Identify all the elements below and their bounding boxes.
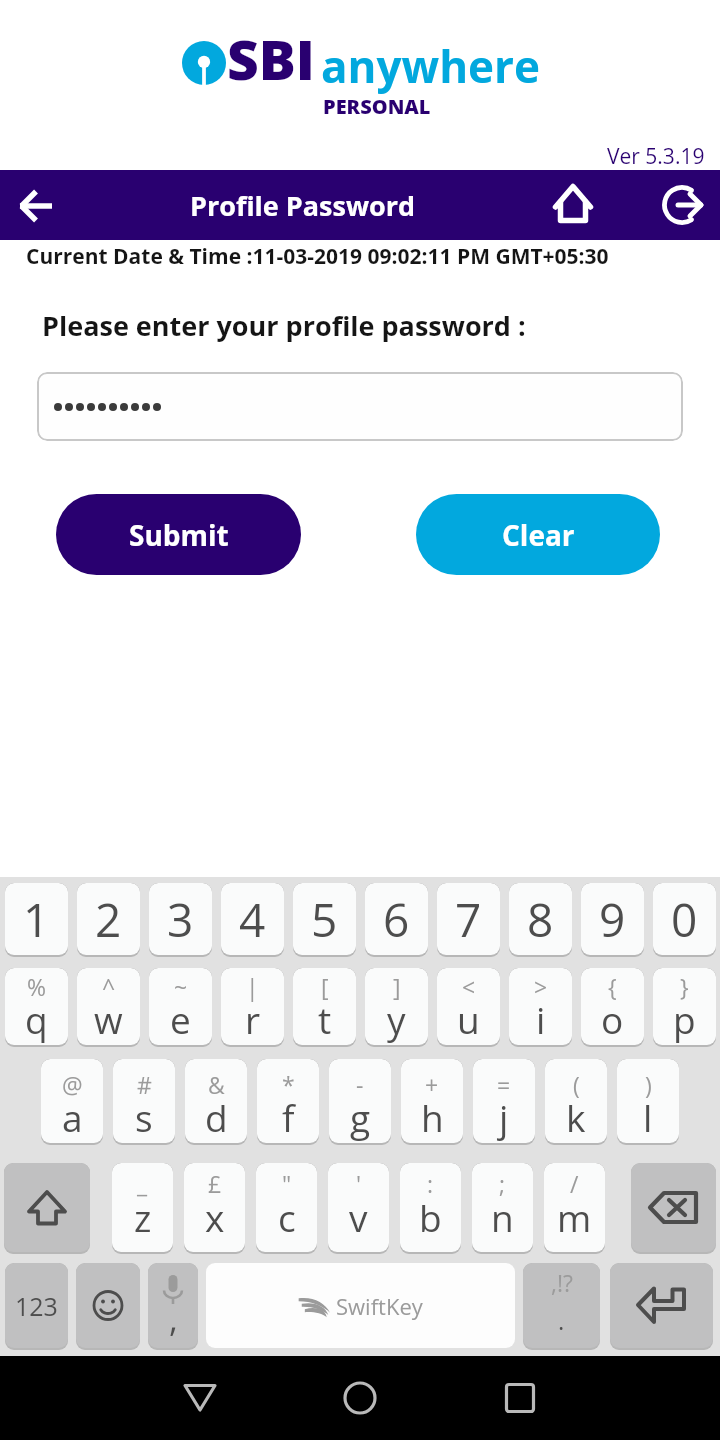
staticText: g [350,1092,371,1142]
staticText: SwiftKey [336,1291,423,1321]
button[interactable]: 5 [293,883,356,957]
staticText: { [608,971,617,1002]
staticText: anywhere [321,36,541,96]
button[interactable]: > [509,968,572,1047]
button[interactable]: 8 [509,883,572,957]
staticText: d [205,1092,228,1142]
button[interactable]: ^ [77,968,140,1047]
button[interactable]: * [257,1059,319,1145]
button[interactable]: ' [328,1163,389,1254]
button[interactable]: Clear [416,494,660,575]
button[interactable]: 7 [437,883,500,957]
button[interactable]: 0 [653,883,716,957]
staticText: m [557,1192,592,1242]
button[interactable]: + [401,1059,463,1145]
button[interactable]: & [185,1059,247,1145]
button[interactable]: _ [112,1163,173,1254]
staticText: & [208,1069,225,1100]
button[interactable]: Back [7,177,65,235]
button[interactable]: Logout [653,176,711,234]
button[interactable]: 1 [5,883,68,957]
staticText: Clear [502,516,575,554]
staticText: > [534,971,548,1002]
staticText: Submit [129,516,229,554]
button[interactable]: Home [318,1356,402,1440]
button[interactable]: Back [158,1356,242,1440]
staticText: a [62,1092,83,1142]
staticText: z [134,1192,152,1242]
button[interactable]: ,!? [523,1263,600,1350]
button[interactable]: Submit [56,494,301,575]
staticText: j [499,1092,509,1142]
staticText: 0 [671,888,698,951]
button[interactable]: ; [472,1163,533,1254]
button[interactable]: < [437,968,500,1047]
staticText: / [570,1168,579,1199]
button[interactable]: £ [184,1163,245,1254]
button[interactable]: Backspace [631,1163,716,1254]
button[interactable]: 6 [365,883,428,957]
button[interactable]: = [473,1059,535,1145]
button[interactable]: Voice input [148,1263,198,1350]
staticText: _ [137,1168,148,1199]
staticText: s [135,1092,153,1142]
staticText: o [601,994,624,1044]
button[interactable]: 4 [221,883,284,957]
button[interactable]: / [544,1163,605,1254]
staticText: n [491,1192,514,1242]
staticText: c [278,1192,296,1242]
staticText: . [558,1304,565,1337]
staticText: } [680,971,689,1002]
button[interactable]: ~ [149,968,212,1047]
button[interactable]: Space [206,1263,515,1348]
staticText: 4 [239,888,266,951]
button[interactable]: 2 [77,883,140,957]
staticText: < [462,971,476,1002]
button[interactable] [37,372,683,441]
staticText: [ [321,971,329,1002]
button[interactable]: } [653,968,716,1047]
staticText: w [94,994,123,1044]
button[interactable]: Home [544,175,602,233]
staticText: PERSONAL [323,93,431,120]
button[interactable]: @ [41,1059,103,1145]
staticText: ] [393,971,401,1002]
button[interactable]: ) [617,1059,679,1145]
staticText: y [387,994,406,1044]
button[interactable]: - [329,1059,391,1145]
button[interactable]: | [221,968,284,1047]
staticText: Please enter your profile password : [42,307,526,344]
staticText: l [643,1092,653,1142]
staticText: * [282,1069,295,1100]
button[interactable]: 3 [149,883,212,957]
button[interactable]: # [113,1059,175,1145]
staticText: x [205,1192,225,1242]
staticText: Ver 5.3.19 [607,142,705,171]
staticText: 5 [311,888,338,951]
staticText: | [246,971,259,1002]
staticText: 8 [527,888,554,951]
staticText: % [27,971,47,1002]
button[interactable]: Emoji [76,1263,140,1350]
button[interactable]: % [5,968,68,1047]
button[interactable]: { [581,968,644,1047]
staticText: @ [62,1069,83,1100]
button[interactable]: [ [293,968,356,1047]
button[interactable]: 9 [581,883,644,957]
staticText: ; [499,1168,506,1199]
button[interactable]: : [400,1163,461,1254]
staticText: ( [573,1069,580,1100]
staticText: = [497,1069,511,1100]
button[interactable]: ] [365,968,428,1047]
button[interactable]: 123 [5,1263,68,1350]
staticText: 3 [167,888,194,951]
staticText: f [282,1092,295,1142]
staticText: ^ [102,971,116,1002]
staticText: b [419,1192,442,1242]
button[interactable]: ( [545,1059,607,1145]
button[interactable]: Enter [610,1263,713,1350]
button[interactable]: Shift [4,1163,90,1254]
button[interactable]: " [256,1163,317,1254]
staticText: ~ [174,971,188,1002]
button[interactable]: Recents [478,1356,562,1440]
